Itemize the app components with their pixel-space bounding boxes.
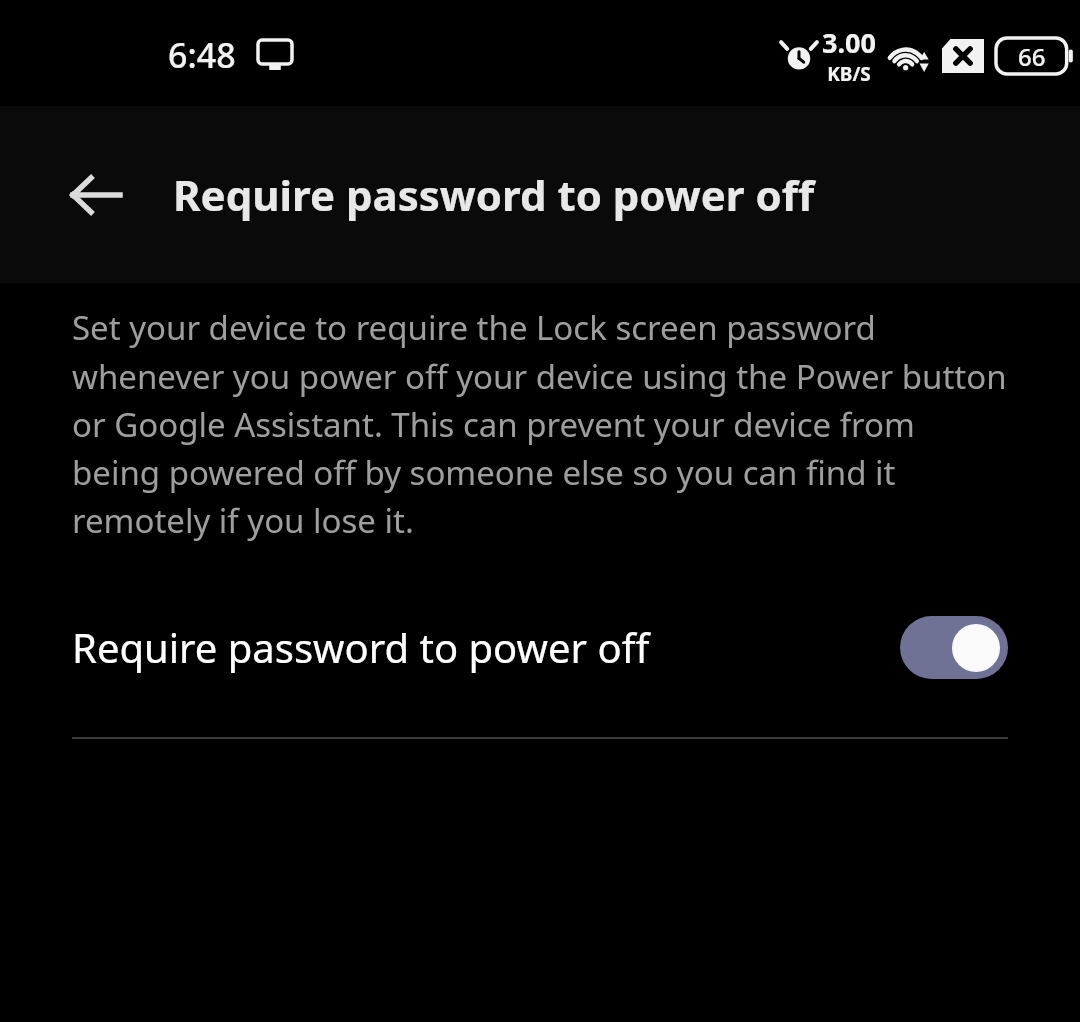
- staticText: 3.00: [822, 24, 876, 61]
- button[interactable]: Require password to power off: [0, 597, 1080, 697]
- staticText: 6:48: [168, 32, 236, 78]
- staticText: Set your device to require the Lock scre…: [72, 305, 1008, 542]
- staticText: 66: [1018, 40, 1046, 73]
- button[interactable]: Back: [50, 149, 142, 241]
- staticText: Require password to power off: [72, 620, 900, 674]
- staticText: KB/S: [827, 61, 871, 87]
- staticText: Require password to power off: [173, 166, 815, 223]
